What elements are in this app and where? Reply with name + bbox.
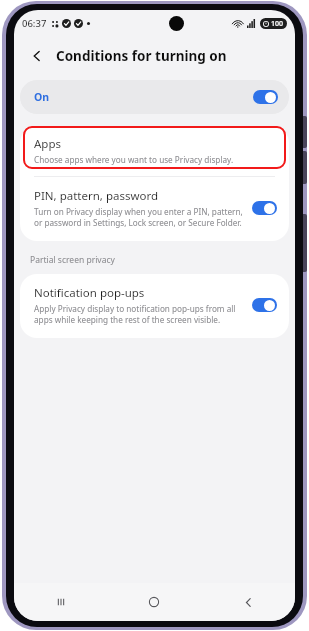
staticText: Notification pop-ups (34, 285, 145, 301)
staticText: 06:37 (22, 17, 47, 30)
button[interactable]: On (20, 80, 289, 114)
staticText: Choose apps where you want to use Privac… (34, 154, 234, 165)
staticText: Partial screen privacy (30, 254, 115, 266)
button[interactable]: Recents (14, 583, 107, 621)
staticText: Apply Privacy display to notification po… (34, 303, 244, 325)
button[interactable]: PIN, pattern, password (20, 177, 289, 241)
button[interactable]: Toggle switch (253, 90, 278, 104)
staticText: PIN, pattern, password (34, 188, 159, 204)
button[interactable]: Home (107, 583, 201, 621)
staticText: Apps (34, 136, 62, 152)
button[interactable]: Notification pop-ups (20, 274, 289, 338)
button[interactable]: Toggle switch (252, 298, 277, 312)
staticText: On (34, 90, 50, 104)
staticText: 100 (271, 19, 284, 29)
button[interactable]: Toggle switch (252, 201, 277, 215)
staticText: Turn on Privacy display when you enter a… (34, 206, 244, 228)
button[interactable]: Back (201, 583, 295, 621)
button[interactable]: Apps (20, 126, 289, 176)
button[interactable]: Back (24, 43, 50, 69)
staticText: Conditions for turning on (56, 47, 227, 65)
